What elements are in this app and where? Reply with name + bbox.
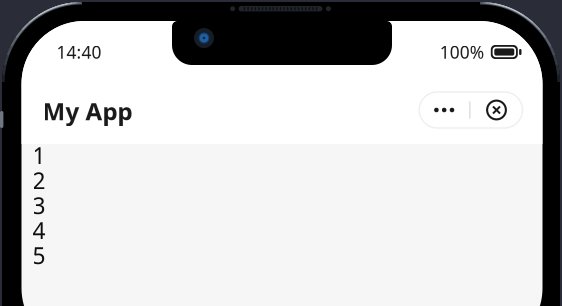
staticText: My App [42,95,132,127]
button[interactable]: More options and close [419,92,522,128]
staticText: 2 [32,165,45,195]
staticText: 14:40 [56,40,101,63]
staticText: 100% [440,40,484,63]
staticText: 1 [32,140,45,170]
staticText: 4 [32,215,45,245]
staticText: 3 [32,190,45,220]
staticText: 5 [32,240,45,270]
